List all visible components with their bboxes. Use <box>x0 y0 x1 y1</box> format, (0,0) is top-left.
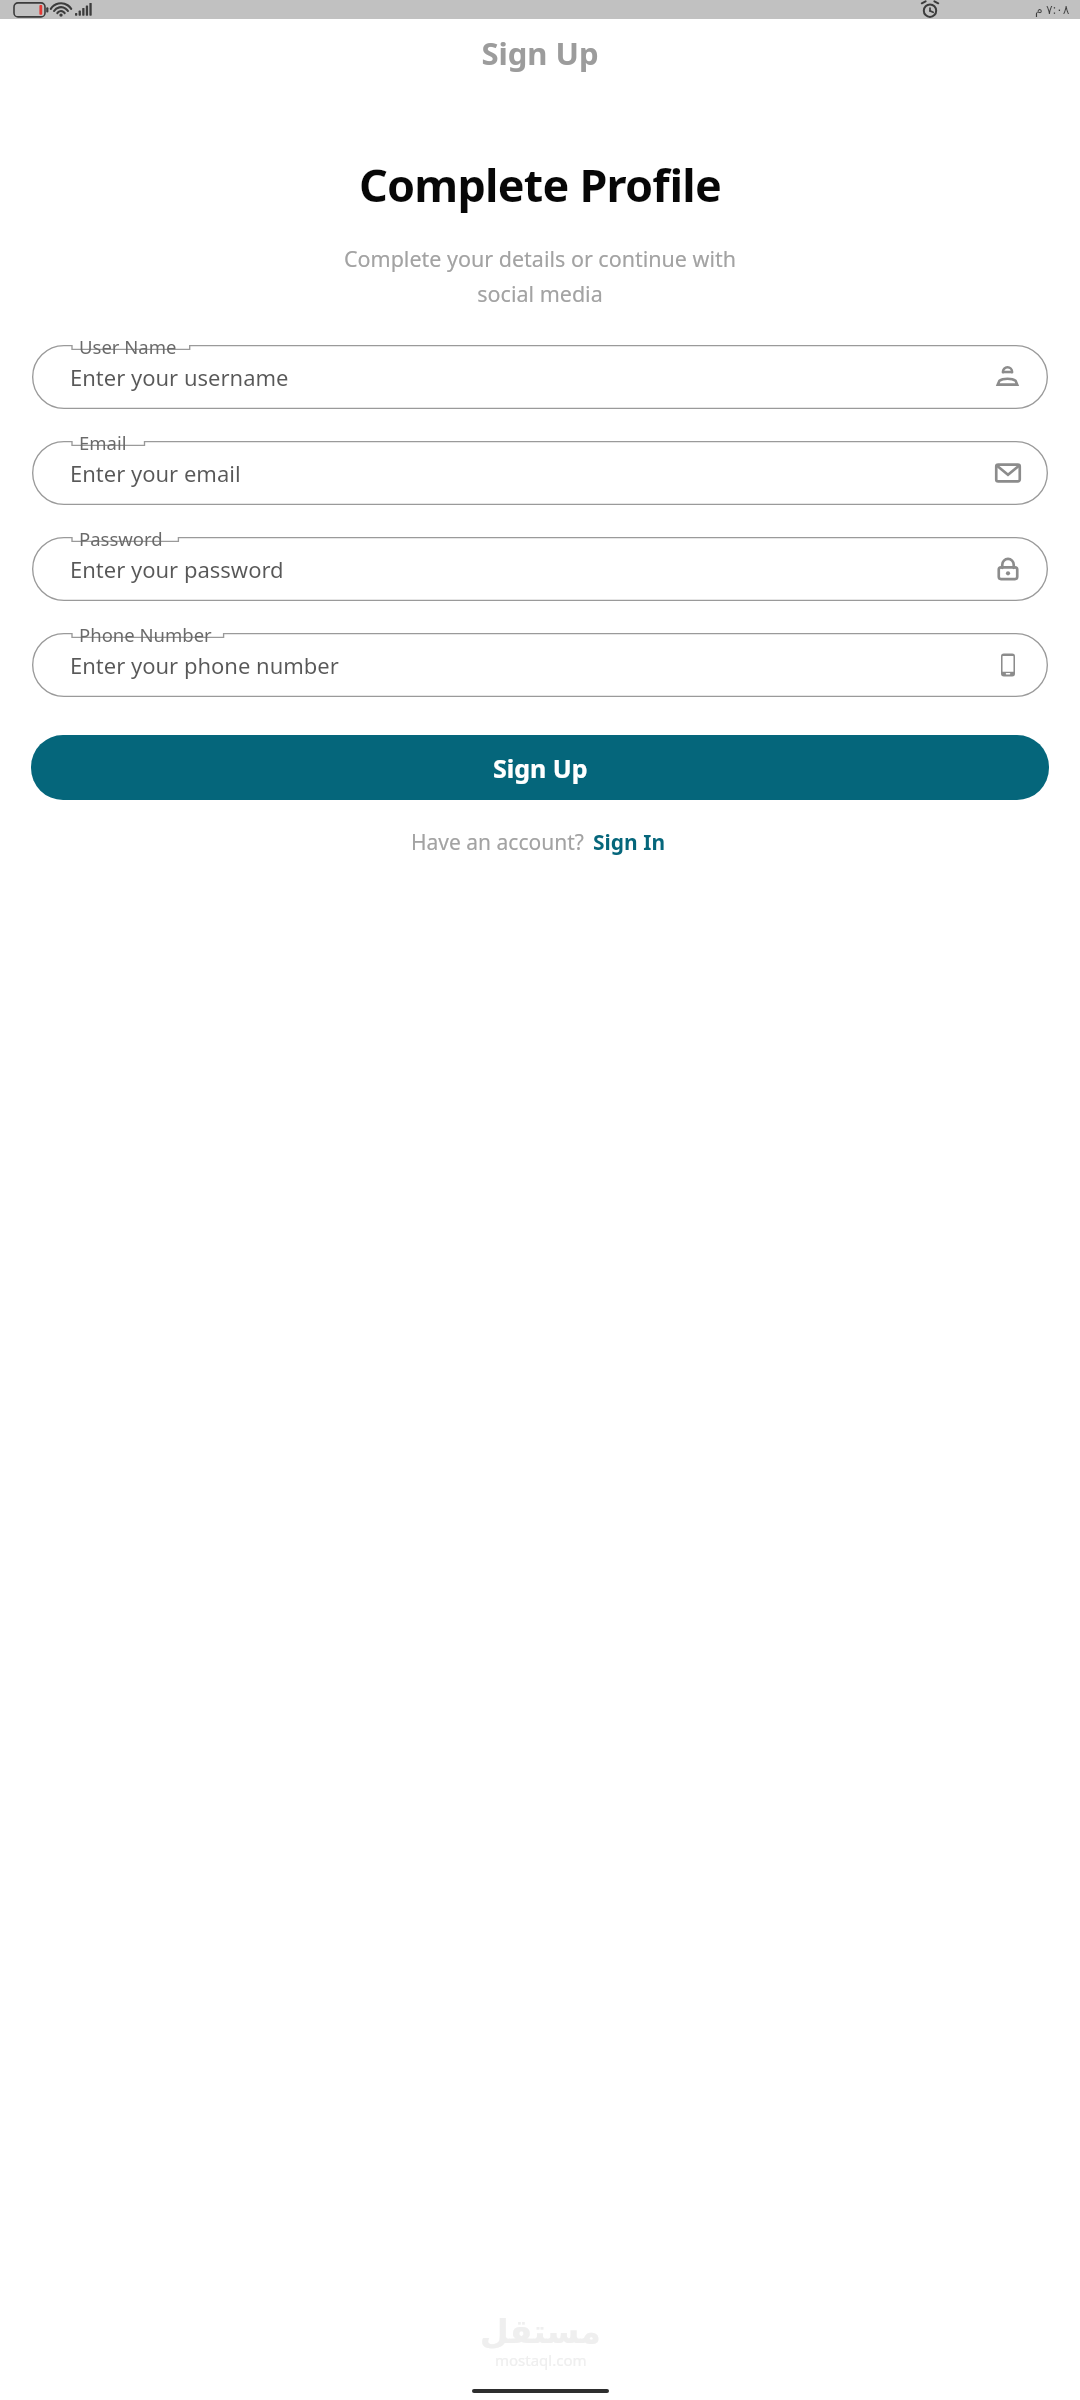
staticText: Password <box>79 526 163 551</box>
button[interactable]: Email field <box>32 430 1048 505</box>
staticText: mostaql.com <box>495 2350 587 2370</box>
button[interactable]: Phone number field <box>32 622 1048 697</box>
staticText: Email <box>79 430 127 455</box>
staticText: Sign Up <box>493 751 588 785</box>
staticText: User Name <box>79 334 177 359</box>
staticText: مستقل <box>480 2312 601 2350</box>
button[interactable]: Password field <box>32 526 1048 601</box>
staticText: Complete Profile <box>0 154 1080 215</box>
button[interactable]: Sign In <box>590 828 669 857</box>
staticText: Complete your details or continue with s… <box>34 244 1046 309</box>
button[interactable]: Username field <box>32 334 1048 409</box>
staticText: Enter your email <box>70 458 241 488</box>
staticText: Sign In <box>593 828 666 857</box>
staticText: Phone Number <box>79 622 212 647</box>
staticText: ٧:٠٨ م <box>1035 1 1070 18</box>
staticText: Enter your password <box>70 554 284 584</box>
staticText: Have an account? <box>411 828 590 857</box>
staticText: Sign Up <box>0 32 1080 74</box>
staticText: Enter your username <box>70 362 289 392</box>
button[interactable]: Sign Up <box>31 735 1049 800</box>
staticText: Enter your phone number <box>70 650 339 680</box>
